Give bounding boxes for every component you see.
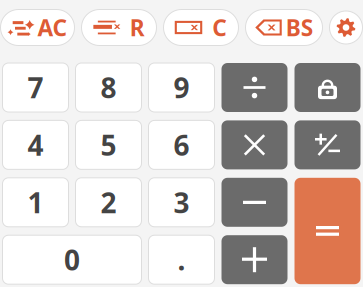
staticText: 1 <box>27 184 43 221</box>
button[interactable]: 0 <box>2 235 141 284</box>
button[interactable]: Plus <box>221 235 287 284</box>
staticText: 4 <box>27 126 43 163</box>
staticText: 5 <box>100 126 116 163</box>
staticText: R <box>130 12 145 42</box>
button[interactable]: AC <box>0 9 74 45</box>
button[interactable]: . <box>148 235 214 284</box>
button[interactable]: 9 <box>148 63 214 112</box>
staticText: 8 <box>100 69 116 106</box>
button[interactable]: R <box>81 9 156 45</box>
button[interactable]: Minus <box>221 178 287 227</box>
button[interactable]: 2 <box>75 178 141 227</box>
button[interactable]: Equals <box>294 178 360 284</box>
staticText: 2 <box>100 184 116 221</box>
button[interactable]: 5 <box>75 120 141 169</box>
staticText: 9 <box>173 69 189 106</box>
button[interactable]: C <box>163 9 238 45</box>
button[interactable]: 1 <box>2 178 68 227</box>
button[interactable]: 7 <box>2 63 68 112</box>
staticText: . <box>177 241 185 278</box>
button[interactable]: Lock <box>294 63 360 112</box>
button[interactable]: Multiply <box>221 120 287 169</box>
button[interactable]: 4 <box>2 120 68 169</box>
button[interactable]: Settings <box>329 11 362 44</box>
button[interactable]: 8 <box>75 63 141 112</box>
staticText: 7 <box>27 69 43 106</box>
button[interactable]: Plus minus <box>294 120 360 169</box>
button[interactable]: BS <box>245 9 322 45</box>
staticText: 3 <box>173 184 189 221</box>
staticText: AC <box>37 12 67 42</box>
button[interactable]: 6 <box>148 120 214 169</box>
staticText: BS <box>286 12 313 42</box>
staticText: C <box>212 12 227 42</box>
button[interactable]: Divide <box>221 63 287 112</box>
button[interactable]: 3 <box>148 178 214 227</box>
staticText: 0 <box>64 241 80 278</box>
staticText: 6 <box>173 126 189 163</box>
